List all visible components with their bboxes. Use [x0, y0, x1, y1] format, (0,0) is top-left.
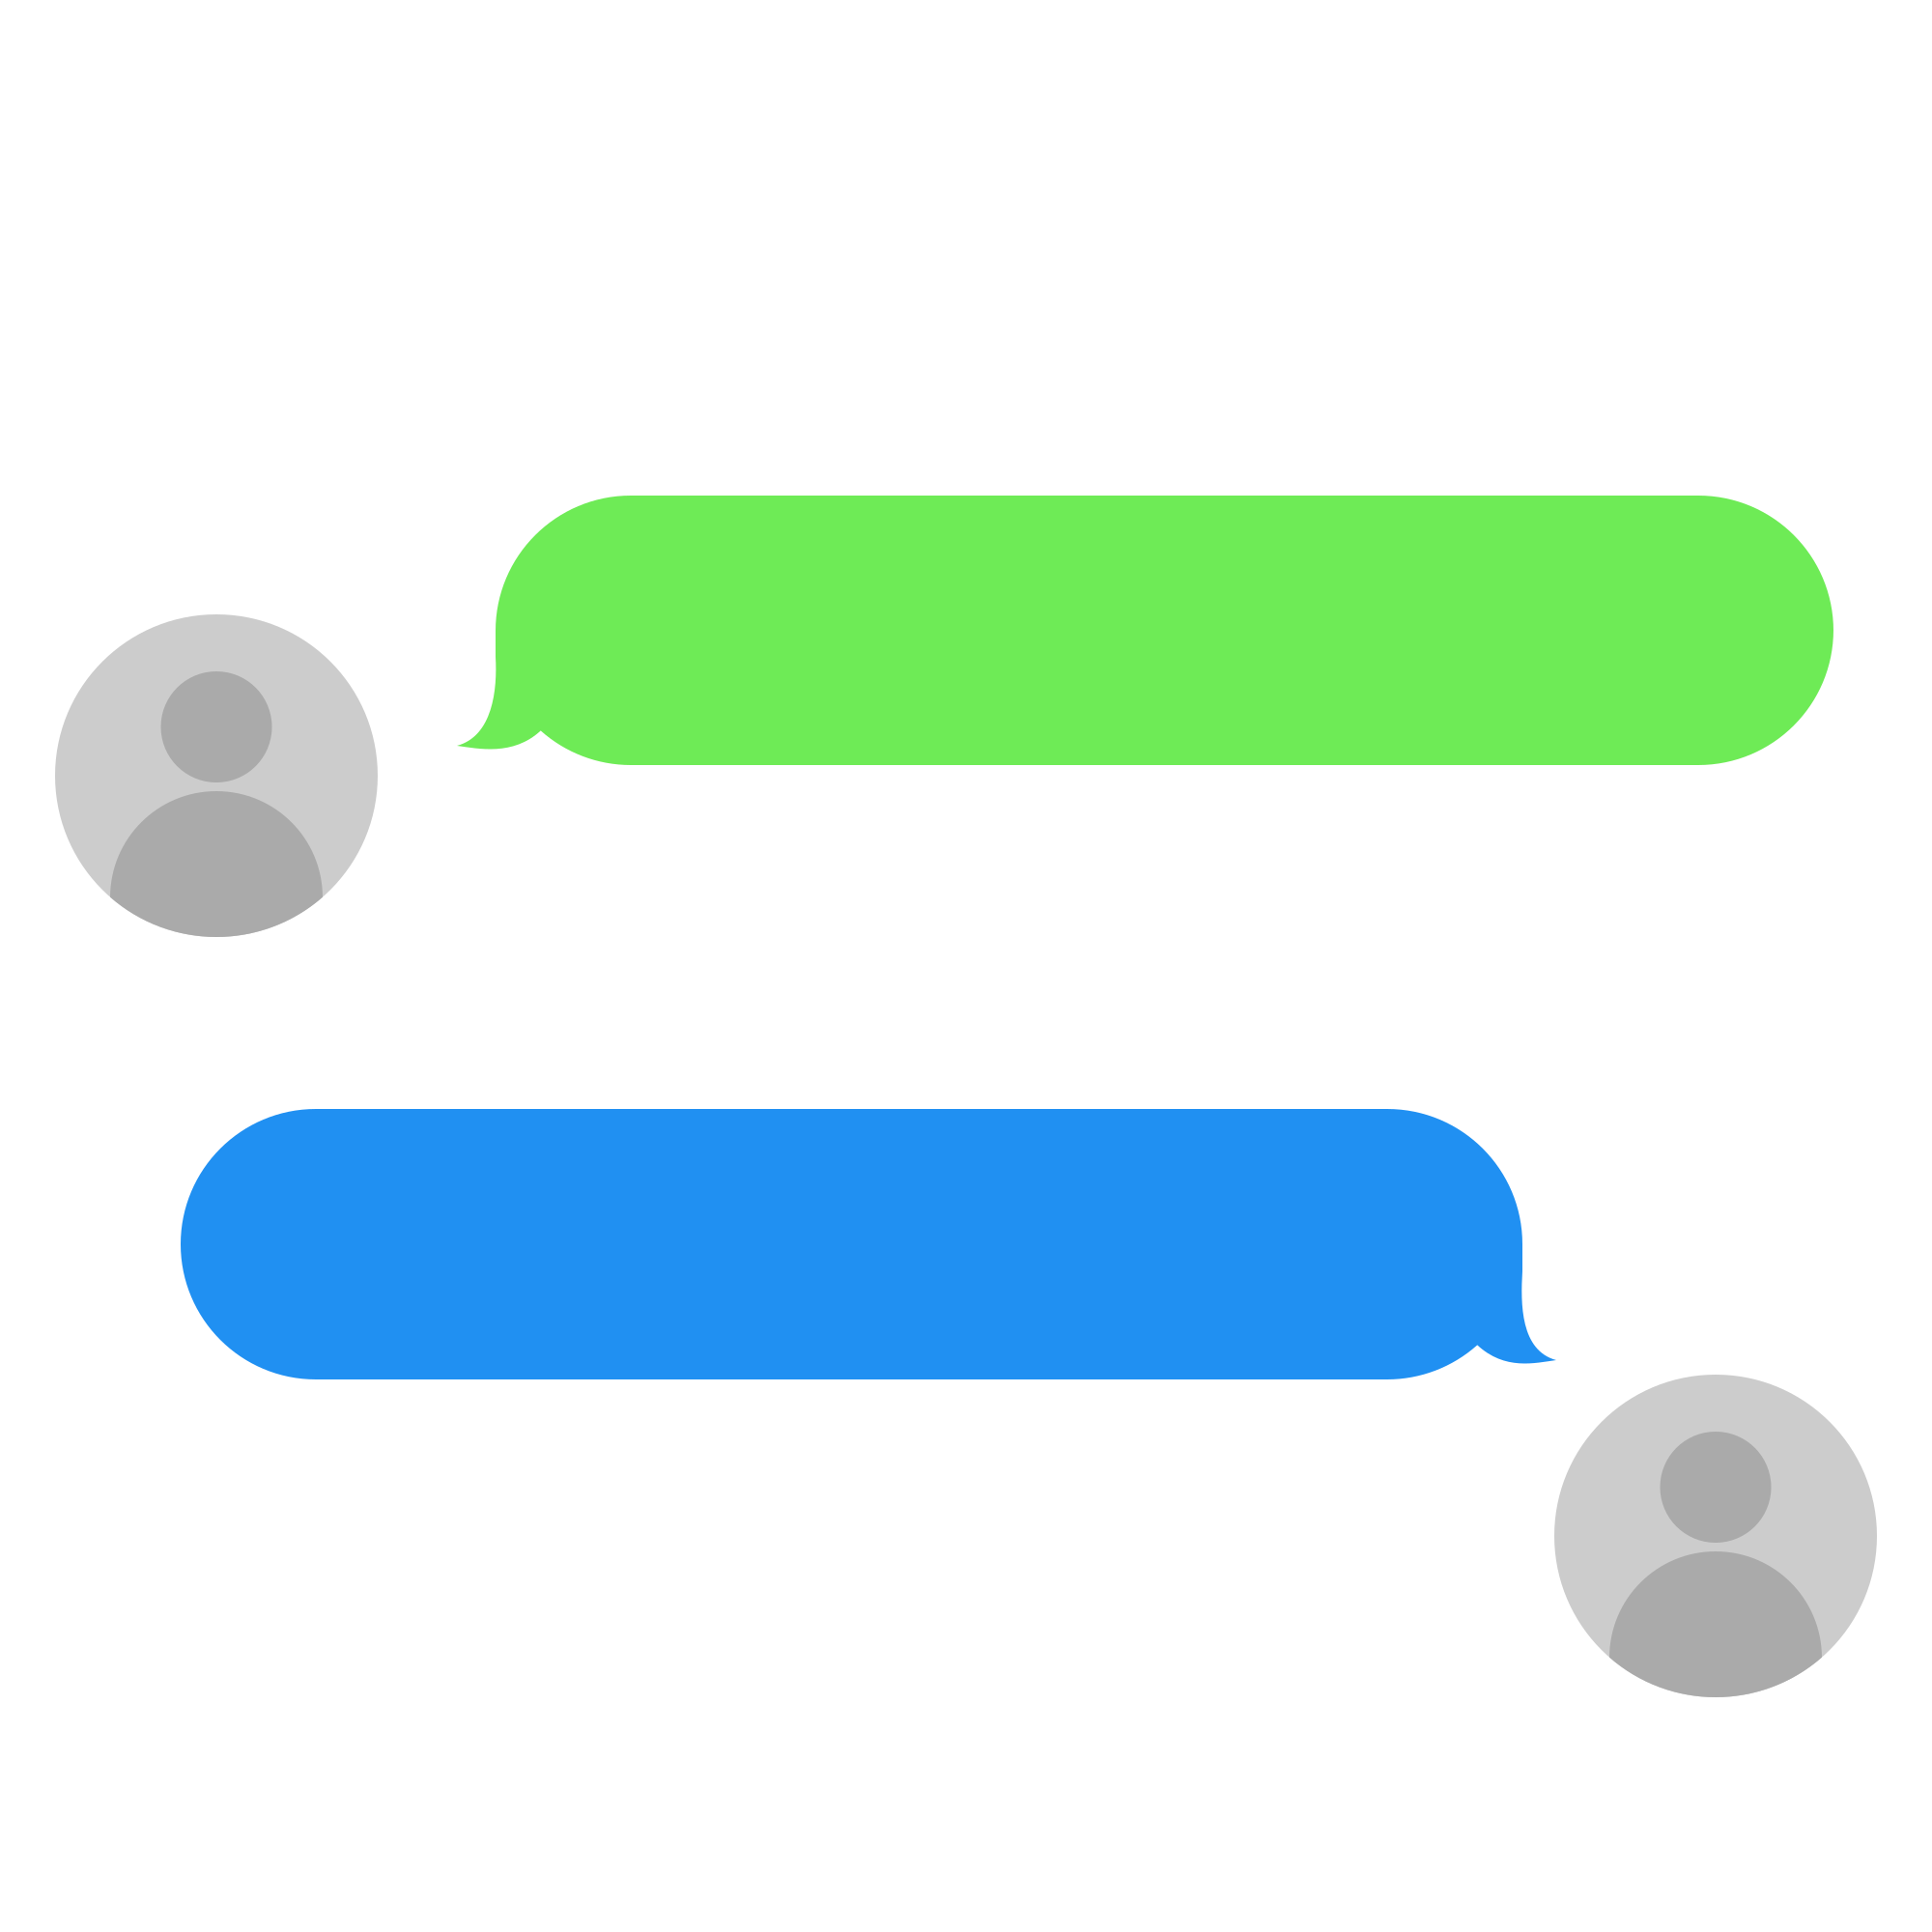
- button[interactable]: Sender profile photo: [55, 614, 378, 937]
- button[interactable]: Sent message: [181, 1109, 1556, 1379]
- button[interactable]: Received message: [457, 496, 1833, 765]
- button[interactable]: Your profile photo: [1554, 1375, 1877, 1697]
